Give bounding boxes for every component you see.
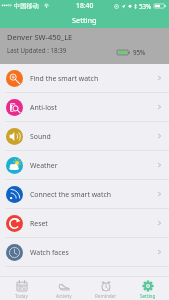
button[interactable]: Reminder xyxy=(85,277,127,300)
staticText: Anti-lost xyxy=(30,103,57,112)
button[interactable]: Setting xyxy=(127,277,169,300)
button[interactable]: Activity xyxy=(43,277,85,300)
staticText: Setting xyxy=(140,293,156,299)
staticText: Reminder xyxy=(95,293,117,299)
button[interactable]: Sound xyxy=(0,122,169,150)
button[interactable]: Watch faces xyxy=(0,238,169,266)
staticText: Reset xyxy=(30,219,48,228)
staticText: 18:40 xyxy=(76,1,94,10)
staticText: Today xyxy=(15,293,28,299)
staticText: Connect the smart watch xyxy=(30,190,112,199)
staticText: 中国移动 xyxy=(14,2,39,10)
button[interactable]: Reset xyxy=(0,209,169,237)
button[interactable]: Find the smart watch xyxy=(0,64,169,92)
staticText: Find the smart watch xyxy=(30,74,99,83)
staticText: Denver SW-450_LE xyxy=(7,32,73,42)
staticText: Weather xyxy=(30,161,58,170)
button[interactable]: Weather xyxy=(0,151,169,179)
button[interactable]: Connect the smart watch xyxy=(0,180,169,208)
button[interactable]: Anti-lost xyxy=(0,93,169,121)
staticText: Setting xyxy=(72,15,97,25)
staticText: 95% xyxy=(133,48,146,56)
button[interactable]: Today xyxy=(0,277,43,300)
staticText: Last Updated : 18:39 xyxy=(7,46,67,54)
staticText: Sound xyxy=(30,132,51,141)
staticText: Activity xyxy=(56,293,72,299)
staticText: 53% xyxy=(139,2,152,10)
staticText: Watch faces xyxy=(30,248,69,257)
